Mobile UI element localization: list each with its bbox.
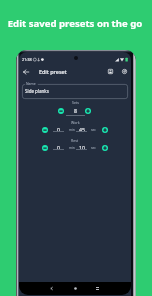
button[interactable]: 8 — [66, 107, 85, 116]
staticText: Rest — [71, 138, 79, 143]
button[interactable]: 0 — [53, 126, 64, 132]
staticText: sec — [91, 146, 96, 150]
staticText: 0 — [57, 126, 60, 132]
button[interactable]: 10 — [76, 144, 87, 150]
button[interactable]: Recent apps — [92, 283, 103, 294]
button[interactable]: Edit preset — [39, 68, 67, 75]
staticText: Work — [71, 120, 80, 125]
staticText: Name — [26, 81, 36, 86]
button[interactable]: Back — [46, 283, 57, 294]
button[interactable]: Increase sets — [85, 108, 91, 114]
staticText: min — [69, 146, 75, 150]
button[interactable]: 0 — [53, 144, 64, 150]
staticText: sec — [91, 128, 96, 132]
staticText: Side planks — [25, 88, 49, 94]
button[interactable]: Decrease Work — [42, 127, 48, 133]
button[interactable]: 45 — [76, 126, 87, 132]
button[interactable]: Increase Work — [102, 127, 108, 133]
staticText: 0 — [57, 144, 60, 150]
button[interactable]: Side planks — [22, 84, 128, 99]
button[interactable]: Decrease sets — [58, 108, 64, 114]
staticText: 45 — [79, 126, 85, 132]
button[interactable]: Save preset — [104, 65, 116, 77]
button[interactable]: Home — [70, 283, 81, 294]
staticText: min — [69, 128, 75, 132]
button[interactable]: Timer settings — [118, 65, 130, 77]
staticText: Edit saved presets on the go — [0, 17, 151, 30]
button[interactable]: Decrease Rest — [42, 145, 48, 151]
staticText: 10 — [79, 144, 85, 150]
staticText: 21:38 — [22, 57, 32, 62]
staticText: Sets — [72, 100, 79, 105]
staticText: 8 — [74, 107, 77, 114]
button[interactable]: Increase Rest — [102, 145, 108, 151]
button[interactable]: Back — [20, 66, 32, 78]
